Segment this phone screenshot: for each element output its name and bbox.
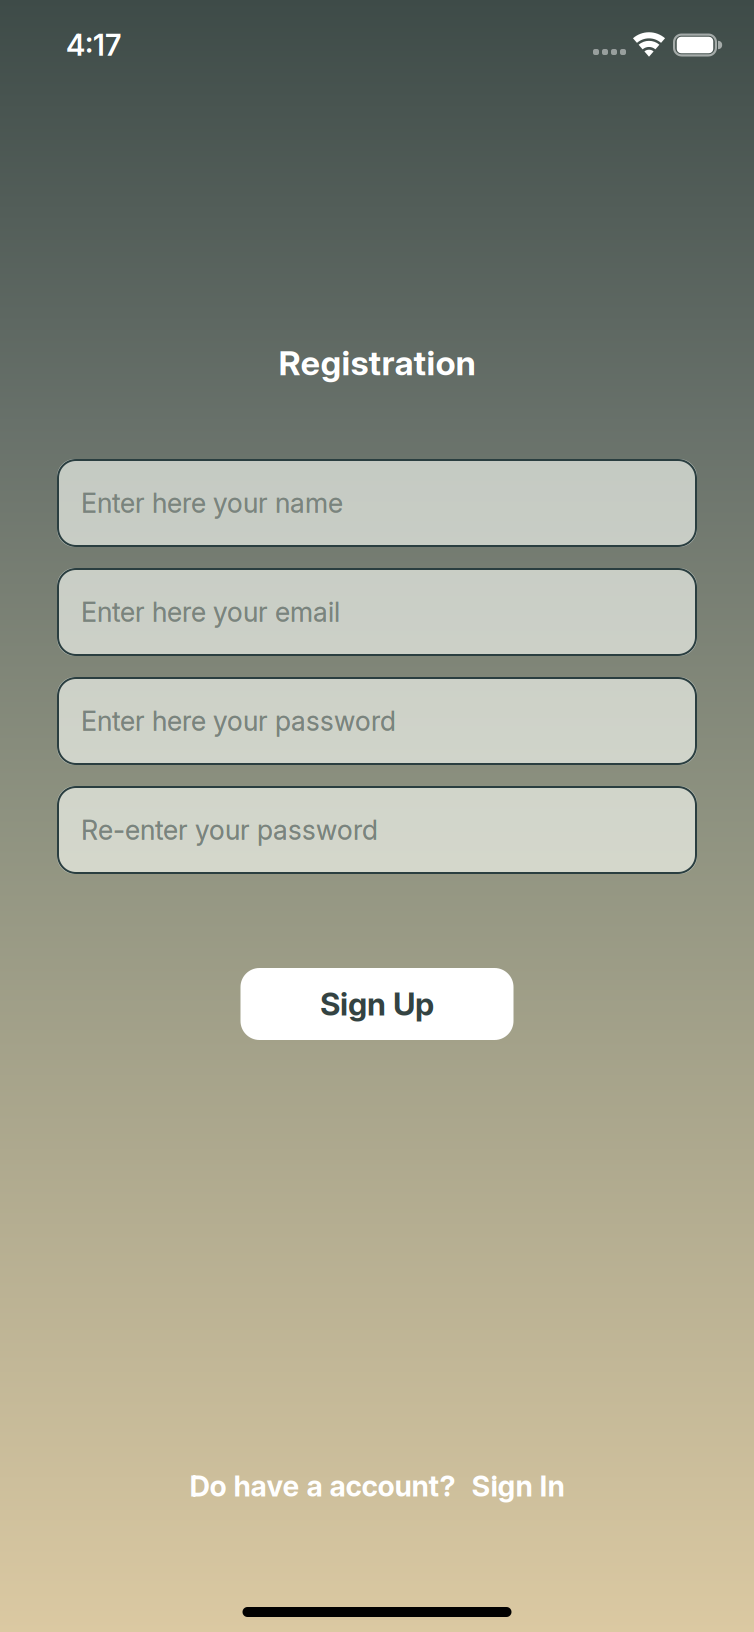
staticText: 4:17 [66, 27, 121, 63]
staticText: Enter here your email [81, 596, 340, 628]
staticText: Enter here your password [81, 705, 396, 737]
button[interactable]: Sign Up [240, 968, 513, 1040]
textField[interactable]: Enter here your password [81, 705, 697, 737]
staticText: Do have a account? [189, 1469, 455, 1503]
staticText: Enter here your name [81, 487, 343, 519]
staticText: Re-enter your password [81, 814, 378, 846]
staticText: Re-enter your password [81, 814, 378, 846]
staticText: Enter here your name [81, 487, 343, 519]
staticText: Enter here your password [81, 705, 396, 737]
textField[interactable]: Enter here your email [81, 596, 697, 628]
textField[interactable]: Re-enter your password [81, 814, 697, 846]
staticText: Sign In [471, 1469, 564, 1503]
staticText: Registration [278, 342, 475, 383]
staticText: Enter here your email [81, 596, 340, 628]
staticText: Sign Up [320, 985, 434, 1023]
button[interactable]: Sign In [471, 1469, 564, 1503]
textField[interactable]: Enter here your name [81, 487, 697, 519]
